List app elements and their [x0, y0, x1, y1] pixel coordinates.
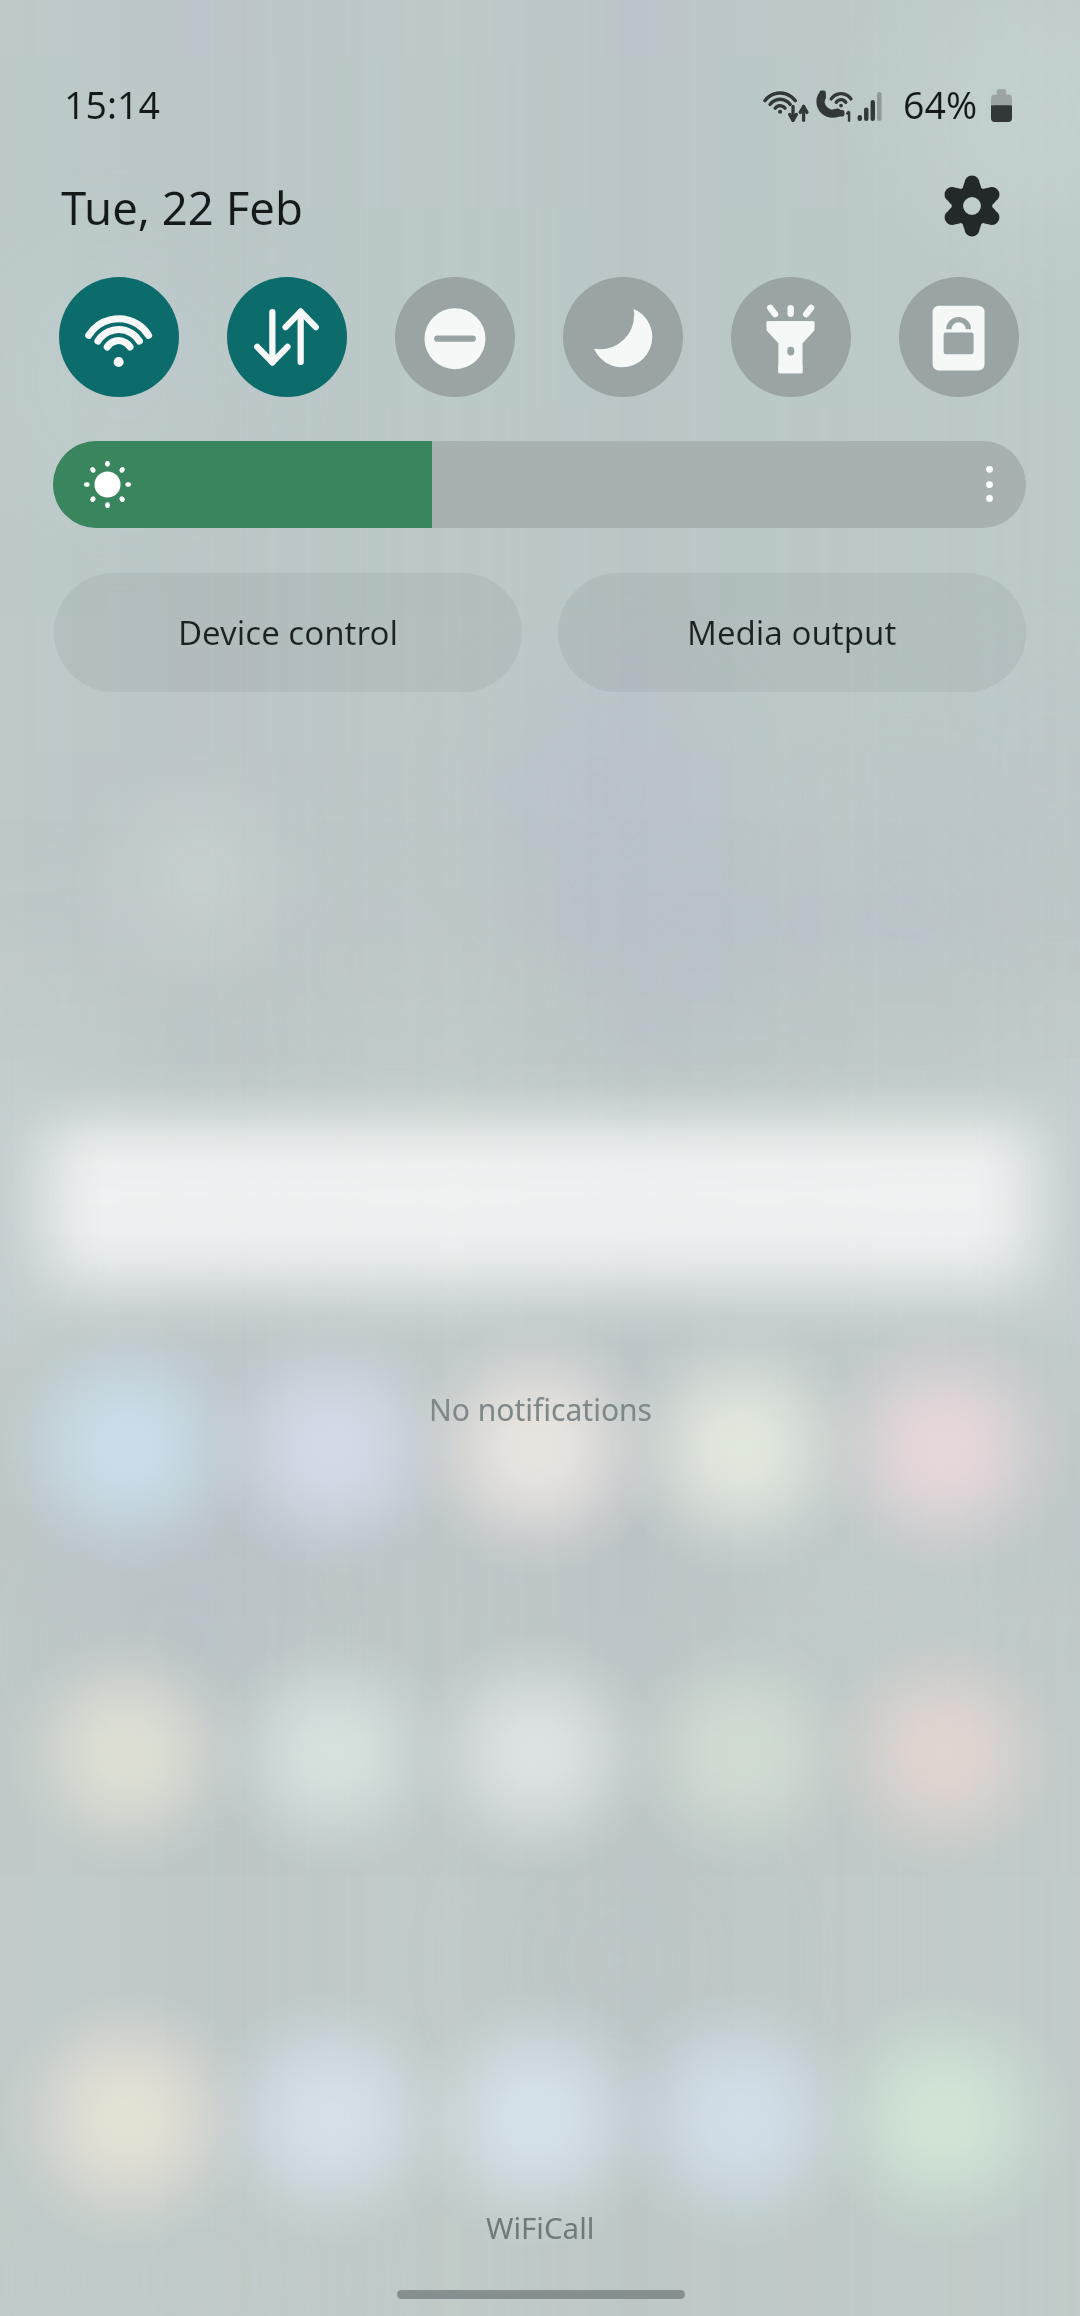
button[interactable]: Mobile data: [227, 277, 347, 397]
staticText: No notifications: [429, 1389, 652, 1430]
button[interactable]: Settings: [928, 162, 1016, 250]
staticText: Tue, 22 Feb: [61, 176, 303, 238]
button[interactable]: Brightness: [53, 441, 1026, 528]
button[interactable]: Bedtime mode: [563, 277, 683, 397]
button[interactable]: Media output: [558, 573, 1026, 692]
button[interactable]: Do not disturb: [395, 277, 515, 397]
button[interactable]: Device control: [54, 573, 522, 692]
button[interactable]: Flashlight: [731, 277, 851, 397]
staticText: Media output: [687, 610, 897, 655]
staticText: 64%: [903, 79, 978, 130]
staticText: Device control: [178, 610, 398, 655]
staticText: WiFiCall: [486, 2207, 595, 2247]
button[interactable]: Wi-Fi: [59, 277, 179, 397]
staticText: 15:14: [64, 79, 160, 130]
button[interactable]: Auto rotate lock: [899, 277, 1019, 397]
